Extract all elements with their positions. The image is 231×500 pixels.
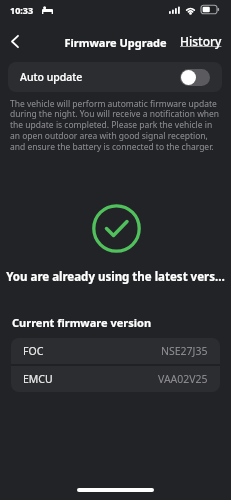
staticText: Current firmware version [12, 315, 152, 330]
button[interactable]: History [180, 33, 222, 49]
staticText: 10:33 [10, 4, 34, 16]
staticText: You are already using the latest vers… [0, 269, 231, 285]
staticText: VAA02V25 [158, 372, 208, 386]
staticText: EMCU [23, 372, 53, 386]
button[interactable]: FOC [11, 338, 220, 364]
staticText: The vehicle will perform automatic firmw… [10, 98, 220, 153]
staticText: FOC [23, 344, 44, 358]
button[interactable]: EMCU [11, 366, 220, 392]
button[interactable] [4, 31, 26, 51]
button[interactable]: Auto update [8, 62, 222, 92]
staticText: Auto update [20, 70, 83, 84]
staticText: Firmware Upgrade [0, 35, 231, 50]
button[interactable] [180, 69, 210, 86]
staticText: NSE27J35 [161, 344, 208, 358]
